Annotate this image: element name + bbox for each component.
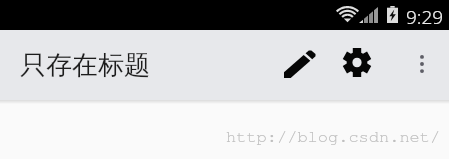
- staticText: 9:29: [406, 4, 444, 30]
- button[interactable]: Edit: [277, 39, 323, 89]
- staticText: http://blog.csdn.net/: [226, 128, 441, 145]
- button[interactable]: More options: [402, 39, 442, 89]
- staticText: 只存在标题: [20, 49, 150, 82]
- button[interactable]: Settings: [333, 37, 381, 87]
